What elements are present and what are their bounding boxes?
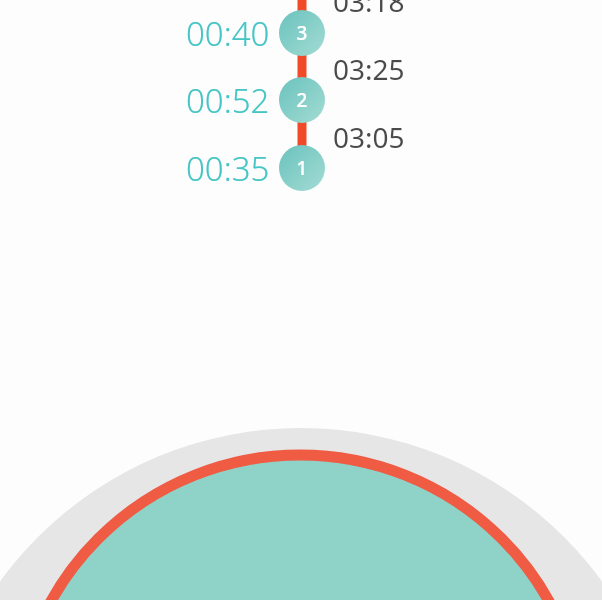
- button[interactable]: Lap timeline and guard status: [0, 0, 602, 600]
